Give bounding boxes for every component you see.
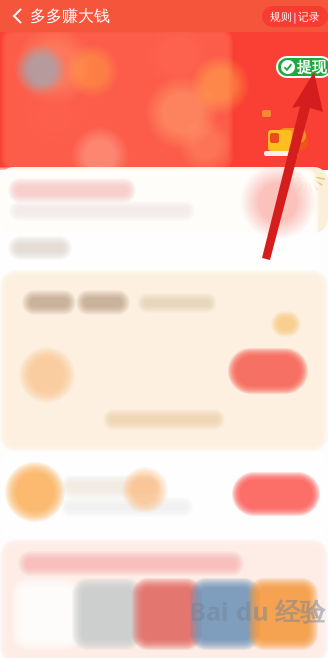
staticText: 规则|记录 (270, 9, 320, 24)
button[interactable]: 提现 (276, 56, 328, 78)
button[interactable]: 规则|记录 (262, 6, 328, 27)
button[interactable] (6, 455, 322, 535)
staticText: Bai du 经验 (189, 594, 325, 628)
button[interactable] (236, 356, 300, 386)
button[interactable]: 返回 (6, 0, 30, 32)
staticText: 提现 (297, 58, 327, 76)
staticText: 多多赚大钱 (30, 6, 110, 26)
